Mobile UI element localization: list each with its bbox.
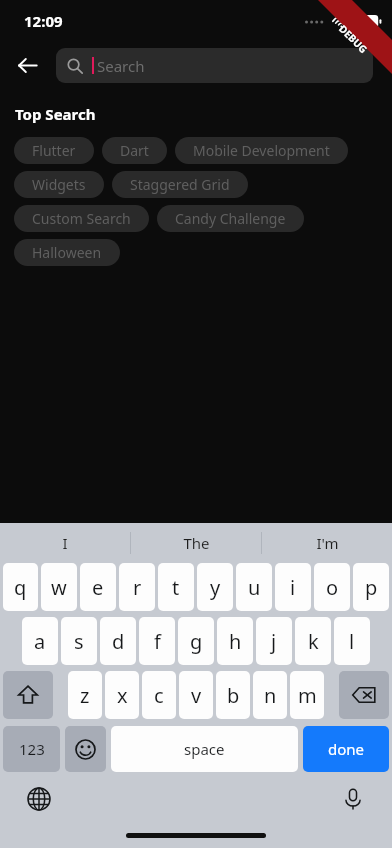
button[interactable]: a (22, 617, 58, 665)
button[interactable]: Backspace (339, 671, 389, 719)
staticText: x (117, 682, 128, 709)
staticText: n (264, 682, 277, 709)
staticText: Candy Challenge (175, 209, 286, 228)
staticText: 123 (19, 739, 45, 759)
button[interactable]: e (80, 563, 116, 611)
button[interactable]: z (68, 671, 102, 719)
button[interactable]: k (295, 617, 331, 665)
button[interactable]: Flutter (14, 137, 94, 164)
staticText: space (184, 739, 225, 759)
button[interactable]: Staggered Grid (112, 171, 248, 198)
button[interactable]: t (158, 563, 194, 611)
staticText: q (14, 574, 27, 601)
staticText: Flutter (32, 141, 76, 160)
staticText: k (308, 628, 319, 655)
staticText: w (51, 574, 67, 601)
staticText: j (271, 628, 277, 655)
staticText: r (133, 574, 142, 601)
button[interactable]: Widgets (14, 171, 104, 198)
staticText: g (190, 628, 203, 655)
staticText: c (154, 682, 164, 709)
button[interactable]: o (314, 563, 350, 611)
button[interactable]: Mobile Development (175, 137, 348, 164)
button[interactable]: 123 (3, 726, 60, 772)
button[interactable]: b (216, 671, 250, 719)
staticText: Staggered Grid (130, 175, 230, 194)
button[interactable]: g (178, 617, 214, 665)
staticText: Mobile Development (193, 141, 330, 160)
button[interactable]: done (303, 726, 389, 772)
staticText: a (34, 628, 46, 655)
staticText: p (365, 574, 378, 601)
staticText: Widgets (32, 175, 86, 194)
staticText: I (62, 533, 68, 553)
staticText: f (154, 628, 161, 655)
staticText: m (298, 682, 317, 709)
staticText: s (74, 628, 84, 655)
button[interactable]: f (139, 617, 175, 665)
button[interactable]: h (217, 617, 253, 665)
staticText: Custom Search (32, 209, 131, 228)
staticText: h (229, 628, 242, 655)
button[interactable]: I (0, 523, 130, 563)
staticText: z (80, 682, 90, 709)
button[interactable]: Dart (102, 137, 167, 164)
staticText: Dart (120, 141, 149, 160)
staticText: b (227, 682, 240, 709)
button[interactable]: Candy Challenge (157, 205, 304, 232)
button[interactable]: n (253, 671, 287, 719)
button[interactable]: y (197, 563, 233, 611)
staticText: Halloween (32, 243, 102, 262)
staticText: o (326, 574, 339, 601)
staticText: done (328, 739, 365, 759)
staticText: v (191, 682, 202, 709)
staticText: 12:09 (24, 11, 63, 31)
staticText: Top Search (15, 104, 96, 124)
button[interactable]: space (111, 726, 298, 772)
button[interactable]: i (275, 563, 311, 611)
button[interactable]: Back (9, 47, 45, 83)
button[interactable]: r (119, 563, 155, 611)
staticText: The (183, 533, 210, 553)
button[interactable]: c (142, 671, 176, 719)
button[interactable]: v (179, 671, 213, 719)
button[interactable]: u (236, 563, 272, 611)
staticText: d (112, 628, 125, 655)
button[interactable]: s (61, 617, 97, 665)
button[interactable]: x (105, 671, 139, 719)
staticText: l (349, 628, 355, 655)
button[interactable]: Voice input (336, 782, 370, 816)
button[interactable]: Search (56, 48, 373, 83)
button[interactable]: Halloween (14, 239, 120, 266)
button[interactable]: l (334, 617, 370, 665)
button[interactable]: Shift (3, 671, 53, 719)
staticText: I'm (316, 533, 339, 553)
staticText: u (248, 574, 261, 601)
button[interactable]: The (131, 523, 261, 563)
staticText: t (172, 574, 180, 601)
button[interactable]: Custom Search (14, 205, 149, 232)
button[interactable]: w (41, 563, 77, 611)
staticText: e (92, 574, 104, 601)
button[interactable]: j (256, 617, 292, 665)
button[interactable]: Emoji (65, 726, 106, 772)
staticText: DEBUG (336, 22, 371, 56)
button[interactable]: I'm (262, 523, 392, 563)
staticText: y (210, 574, 221, 601)
staticText: i (290, 574, 296, 601)
button[interactable]: q (3, 563, 38, 611)
staticText: Search (97, 56, 145, 76)
button[interactable]: m (290, 671, 324, 719)
button[interactable]: d (100, 617, 136, 665)
button[interactable]: p (353, 563, 389, 611)
button[interactable]: Change keyboard (22, 782, 56, 816)
